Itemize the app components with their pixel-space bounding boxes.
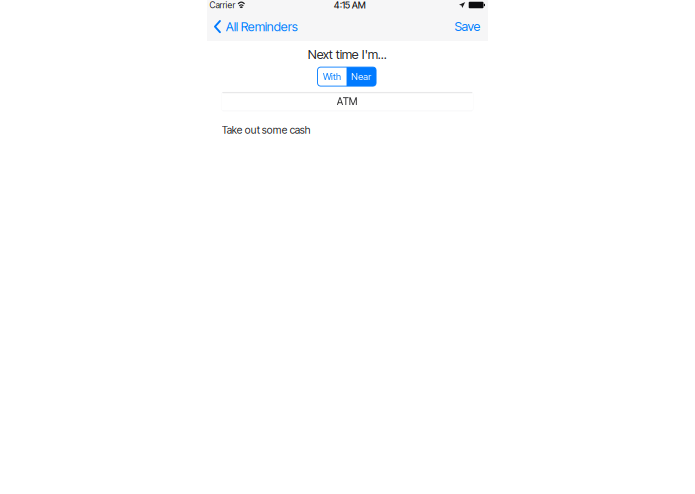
staticText: All Reminders: [226, 19, 298, 34]
staticText: Near: [351, 71, 371, 82]
staticText: 4:15 AM: [334, 0, 366, 11]
button[interactable]: ATM: [221, 92, 473, 111]
button[interactable]: Save: [446, 15, 488, 37]
staticText: Save: [454, 19, 480, 34]
staticText: Take out some cash: [222, 124, 311, 136]
button[interactable]: All Reminders: [207, 15, 306, 39]
button[interactable]: Near: [347, 67, 376, 86]
staticText: ATM: [337, 95, 358, 108]
staticText: Next time I'm...: [308, 47, 387, 62]
staticText: Carrier: [209, 0, 235, 10]
staticText: With: [323, 71, 341, 82]
button[interactable]: Take out some cash: [207, 121, 488, 139]
button[interactable]: With: [318, 67, 347, 86]
